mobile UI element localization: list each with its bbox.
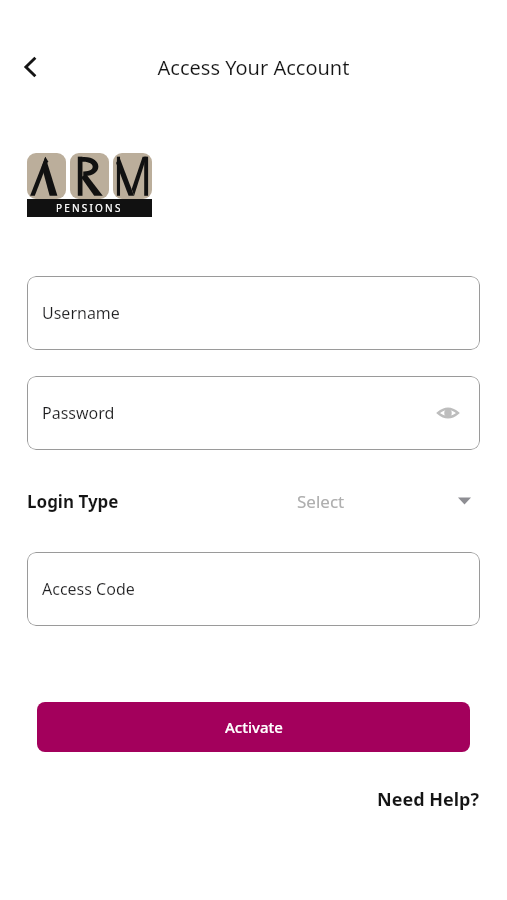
button[interactable]: Username: [27, 276, 480, 350]
staticText: Password: [42, 402, 115, 424]
staticText: Need Help?: [377, 787, 480, 812]
staticText: Access Your Account: [0, 54, 507, 81]
button[interactable]: Back: [10, 47, 50, 87]
button[interactable]: Password: [27, 376, 480, 450]
staticText: Activate: [225, 717, 283, 737]
button[interactable]: Login Type: [27, 481, 480, 521]
staticText: PENSIONS: [56, 201, 123, 215]
staticText: Access Code: [42, 578, 135, 600]
button[interactable]: Access Code: [27, 552, 480, 626]
staticText: Select: [297, 490, 345, 513]
button[interactable]: Need Help?: [375, 783, 482, 816]
button[interactable]: Activate: [37, 702, 470, 752]
button[interactable]: Show password: [433, 398, 463, 428]
staticText: Username: [42, 302, 120, 324]
staticText: Login Type: [27, 490, 119, 513]
